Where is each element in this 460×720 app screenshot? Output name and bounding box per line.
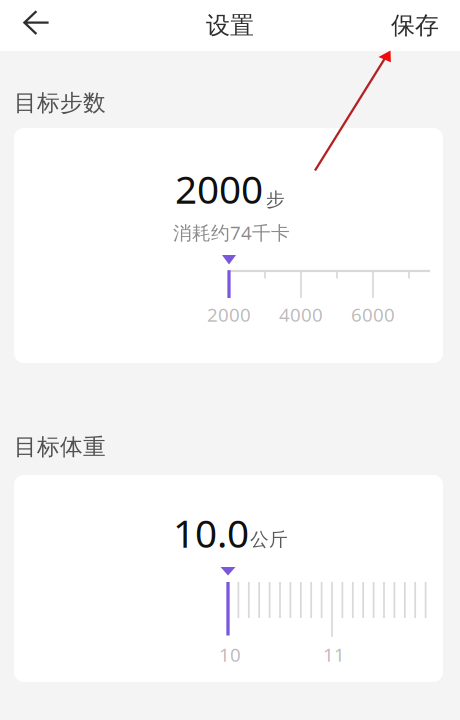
staticText: 目标步数 (14, 89, 106, 117)
staticText: 10 (219, 642, 241, 667)
staticText: 10.0 (173, 507, 249, 558)
staticText: 2000 (175, 163, 263, 214)
button[interactable]: Back (0, 0, 90, 51)
staticText: 目标体重 (14, 433, 106, 461)
staticText: 6000 (351, 302, 395, 327)
staticText: 公斤 (250, 528, 288, 551)
staticText: 11 (323, 642, 345, 667)
staticText: 4000 (279, 302, 323, 327)
staticText: 消耗约74千卡 (173, 220, 290, 245)
staticText: 设置 (206, 11, 254, 40)
staticText: 保存 (391, 11, 439, 40)
staticText: 步 (266, 188, 285, 211)
staticText: 2000 (207, 302, 251, 327)
button[interactable]: 保存 (370, 0, 460, 51)
